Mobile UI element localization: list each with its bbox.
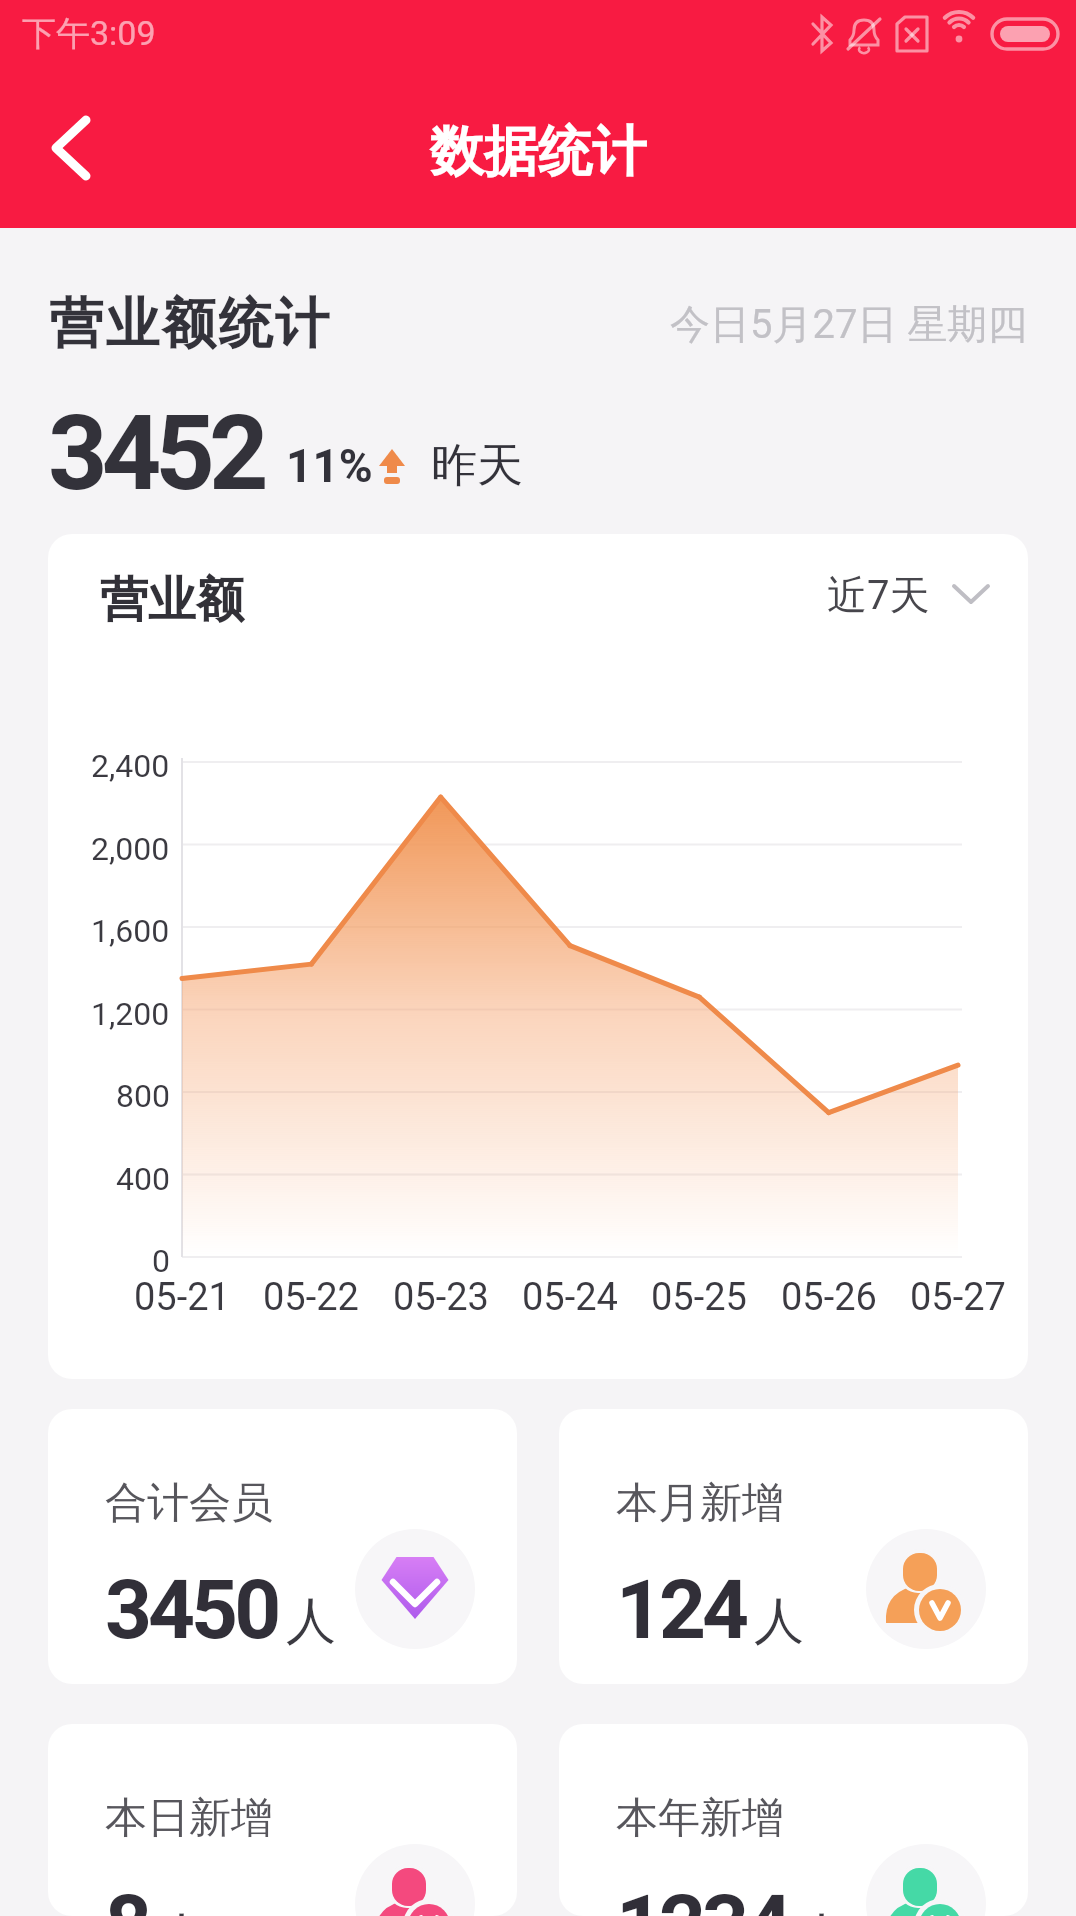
staticText: 8	[105, 1877, 149, 1916]
staticText: 下午3:09	[22, 12, 156, 55]
staticText: 营业额统计	[48, 290, 330, 358]
staticText: 05-21	[134, 1275, 230, 1320]
staticText: 05-24	[522, 1275, 618, 1320]
staticText: 400	[116, 1160, 170, 1198]
button[interactable]: 近7天	[819, 562, 1000, 628]
staticText: 05-22	[263, 1275, 359, 1320]
button[interactable]: 合计会员	[48, 1409, 517, 1684]
staticText: 营业额	[100, 570, 244, 630]
staticText: 本月新增	[616, 1477, 784, 1530]
staticText: 1234	[616, 1877, 789, 1916]
staticText: 05-23	[393, 1275, 489, 1320]
staticText: 05-25	[651, 1275, 747, 1320]
staticText: 3450	[105, 1562, 278, 1658]
staticText: 05-27	[910, 1275, 1006, 1320]
staticText: 11%	[286, 439, 373, 493]
staticText: 合计会员	[105, 1477, 273, 1530]
staticText: 人	[754, 1590, 804, 1653]
staticText: 本年新增	[616, 1792, 784, 1845]
staticText: 124	[616, 1562, 746, 1658]
button[interactable]: 本日新增	[48, 1724, 517, 1916]
staticText: 人	[157, 1905, 207, 1916]
staticText: 3452	[48, 393, 263, 515]
button[interactable]	[20, 96, 120, 200]
staticText: 人	[286, 1590, 336, 1653]
staticText: 800	[116, 1077, 170, 1115]
staticText: 本日新增	[105, 1792, 273, 1845]
staticText: 1,600	[91, 912, 170, 950]
button[interactable]: 本年新增	[559, 1724, 1028, 1916]
staticText: 2,000	[91, 830, 170, 868]
staticText: 人	[797, 1905, 847, 1916]
staticText: 1,200	[91, 995, 170, 1033]
staticText: 今日5月27日 星期四	[670, 299, 1028, 349]
staticText: 昨天	[431, 437, 523, 495]
staticText: 近7天	[827, 570, 930, 620]
button[interactable]: 本月新增	[559, 1409, 1028, 1684]
staticText: 2,400	[91, 747, 170, 785]
staticText: 0	[152, 1242, 170, 1280]
staticText: 05-26	[781, 1275, 877, 1320]
staticText: 数据统计	[430, 118, 646, 186]
